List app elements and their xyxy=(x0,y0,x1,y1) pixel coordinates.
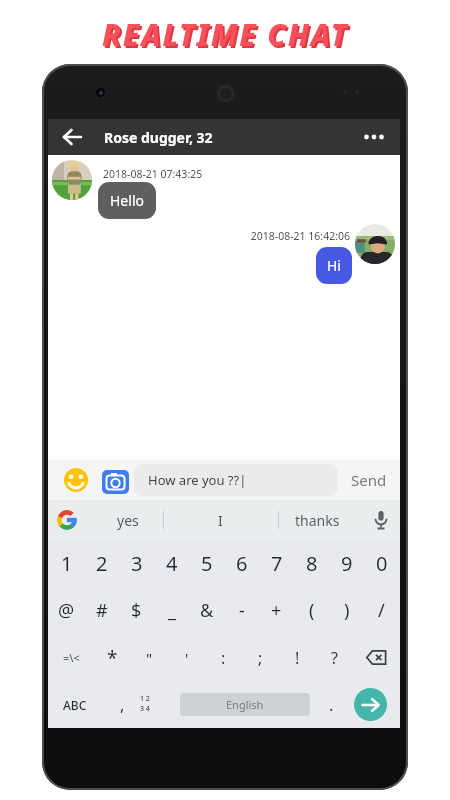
staticText: 4 xyxy=(166,550,178,577)
staticText: 0 xyxy=(376,550,388,577)
button[interactable] xyxy=(102,470,129,494)
button[interactable]: 5 xyxy=(189,540,224,587)
button[interactable]: 6 xyxy=(224,540,259,587)
staticText: $ xyxy=(131,598,142,623)
staticText: 8 xyxy=(306,550,318,577)
button[interactable] xyxy=(57,510,77,530)
staticText: ABC xyxy=(63,697,87,713)
staticText: REALTIME CHAT xyxy=(104,16,351,57)
button[interactable]: Hello xyxy=(110,191,144,210)
button[interactable]: & xyxy=(189,587,224,634)
button[interactable]: thanks xyxy=(279,500,355,540)
button[interactable] xyxy=(364,134,384,140)
staticText: thanks xyxy=(295,511,340,530)
button[interactable]: _ xyxy=(154,587,189,634)
button[interactable]: , xyxy=(108,681,136,728)
button[interactable]: ? xyxy=(316,634,353,681)
staticText: 2018-08-21 07:43:25 xyxy=(103,167,203,181)
staticText: / xyxy=(378,598,385,623)
button[interactable] xyxy=(353,634,399,681)
button[interactable] xyxy=(64,468,88,492)
staticText: # xyxy=(96,598,108,623)
button[interactable]: @ xyxy=(49,587,84,634)
button[interactable]: - xyxy=(224,587,259,634)
staticText: ' xyxy=(185,648,189,668)
button[interactable]: * xyxy=(94,634,131,681)
button[interactable]: 3 xyxy=(119,540,154,587)
staticText: 3 4 xyxy=(140,704,150,714)
staticText: Hi xyxy=(327,256,341,275)
staticText: : xyxy=(221,647,226,669)
button[interactable] xyxy=(63,129,82,145)
staticText: 2018-08-21 16:42:06 xyxy=(198,229,350,243)
button[interactable]: ABC xyxy=(54,681,96,728)
button[interactable]: Hi xyxy=(327,256,341,275)
button[interactable]: 1 xyxy=(49,540,84,587)
button[interactable] xyxy=(373,511,389,530)
staticText: Hello xyxy=(110,191,144,210)
button[interactable]: . xyxy=(320,681,342,728)
staticText: 9 xyxy=(341,550,353,577)
staticText: & xyxy=(200,598,214,623)
button[interactable]: 1 2 xyxy=(140,694,150,714)
button[interactable]: 4 xyxy=(154,540,189,587)
button[interactable]: How are you ??| xyxy=(134,464,338,496)
button[interactable]: 2 xyxy=(84,540,119,587)
button[interactable] xyxy=(354,688,387,721)
button[interactable]: ' xyxy=(168,634,205,681)
button[interactable]: =\< xyxy=(49,634,94,681)
staticText: I xyxy=(218,511,223,530)
staticText: 5 xyxy=(201,550,213,577)
button[interactable]: : xyxy=(205,634,242,681)
staticText: + xyxy=(271,598,282,623)
staticText: English xyxy=(226,697,264,712)
staticText: ) xyxy=(344,598,350,623)
button[interactable]: ( xyxy=(294,587,329,634)
staticText: 1 xyxy=(61,550,73,577)
staticText: ; xyxy=(258,647,263,669)
staticText: _ xyxy=(168,598,176,623)
button[interactable]: 0 xyxy=(364,540,399,587)
button[interactable]: 7 xyxy=(259,540,294,587)
button[interactable]: $ xyxy=(119,587,154,634)
staticText: ? xyxy=(331,647,338,669)
button[interactable]: English xyxy=(180,693,310,716)
button[interactable]: ) xyxy=(329,587,364,634)
button[interactable]: Rose dugger, 32 xyxy=(48,119,400,155)
staticText: How are you ??| xyxy=(148,471,247,489)
button[interactable]: # xyxy=(84,587,119,634)
staticText: Rose dugger, 32 xyxy=(104,128,213,147)
button[interactable]: 8 xyxy=(294,540,329,587)
staticText: 2 xyxy=(96,550,108,577)
staticText: . xyxy=(329,694,334,716)
staticText: yes xyxy=(117,511,139,530)
button[interactable]: + xyxy=(259,587,294,634)
staticText: " xyxy=(146,648,153,668)
button[interactable]: I xyxy=(164,500,277,540)
button[interactable]: ; xyxy=(242,634,279,681)
staticText: ! xyxy=(295,647,300,669)
button[interactable]: yes xyxy=(92,500,164,540)
staticText: @ xyxy=(58,598,75,623)
button[interactable]: " xyxy=(131,634,168,681)
staticText: 6 xyxy=(236,550,248,577)
button[interactable]: 9 xyxy=(329,540,364,587)
button[interactable]: / xyxy=(364,587,399,634)
staticText: 7 xyxy=(271,550,283,577)
button[interactable]: ! xyxy=(279,634,316,681)
staticText: REALTIME CHAT xyxy=(102,14,349,55)
staticText: =\< xyxy=(63,650,80,665)
button[interactable]: Send xyxy=(351,470,387,490)
staticText: - xyxy=(239,598,245,623)
staticText: 3 xyxy=(131,550,143,577)
staticText: 1 2 xyxy=(140,694,150,704)
staticText: * xyxy=(107,645,118,671)
staticText: ( xyxy=(309,598,315,623)
staticText: , xyxy=(120,694,125,716)
